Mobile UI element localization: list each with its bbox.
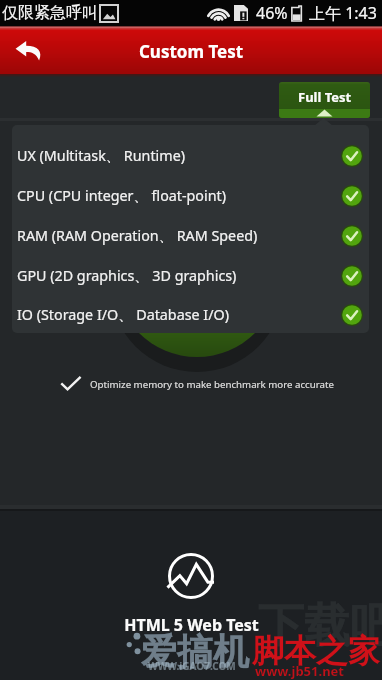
staticText: 爱搞机 — [141, 629, 249, 674]
button[interactable]: Optimize memory to make benchmark more a… — [60, 372, 334, 396]
button[interactable]: HTML 5 Web Test — [0, 553, 382, 636]
staticText: 下载吧 — [258, 597, 382, 655]
staticText: Optimize memory to make benchmark more a… — [90, 378, 334, 391]
button[interactable]: Back — [5, 26, 53, 74]
staticText: GPU (2D graphics、 3D graphics) — [17, 266, 237, 286]
staticText: IO (Storage I/O、 Database I/O) — [17, 305, 229, 325]
staticText: 上午 1:43 — [309, 2, 377, 24]
button[interactable]: CPU (CPU integer、 float-point) — [12, 176, 369, 216]
staticText: Custom Test — [0, 40, 382, 63]
staticText: WWW.iGAO7.COM — [148, 659, 236, 673]
button[interactable]: Full Test — [279, 82, 370, 118]
staticText: Full Test — [298, 88, 352, 106]
staticText: 脚本之家 — [252, 631, 380, 671]
staticText: www.jb51.net — [255, 662, 344, 680]
button[interactable]: UX (Multitask、 Runtime) — [12, 136, 369, 176]
staticText: RAM (RAM Operation、 RAM Speed) — [17, 226, 258, 246]
staticText: 46% — [256, 2, 288, 24]
button[interactable]: IO (Storage I/O、 Database I/O) — [12, 296, 369, 333]
staticText: CPU (CPU integer、 float-point) — [17, 186, 226, 206]
staticText: HTML 5 Web Test — [124, 614, 259, 636]
button[interactable]: RAM (RAM Operation、 RAM Speed) — [12, 216, 369, 256]
button[interactable]: GPU (2D graphics、 3D graphics) — [12, 256, 369, 296]
staticText: UX (Multitask、 Runtime) — [17, 146, 185, 166]
staticText: 仅限紧急呼叫 — [2, 3, 98, 23]
